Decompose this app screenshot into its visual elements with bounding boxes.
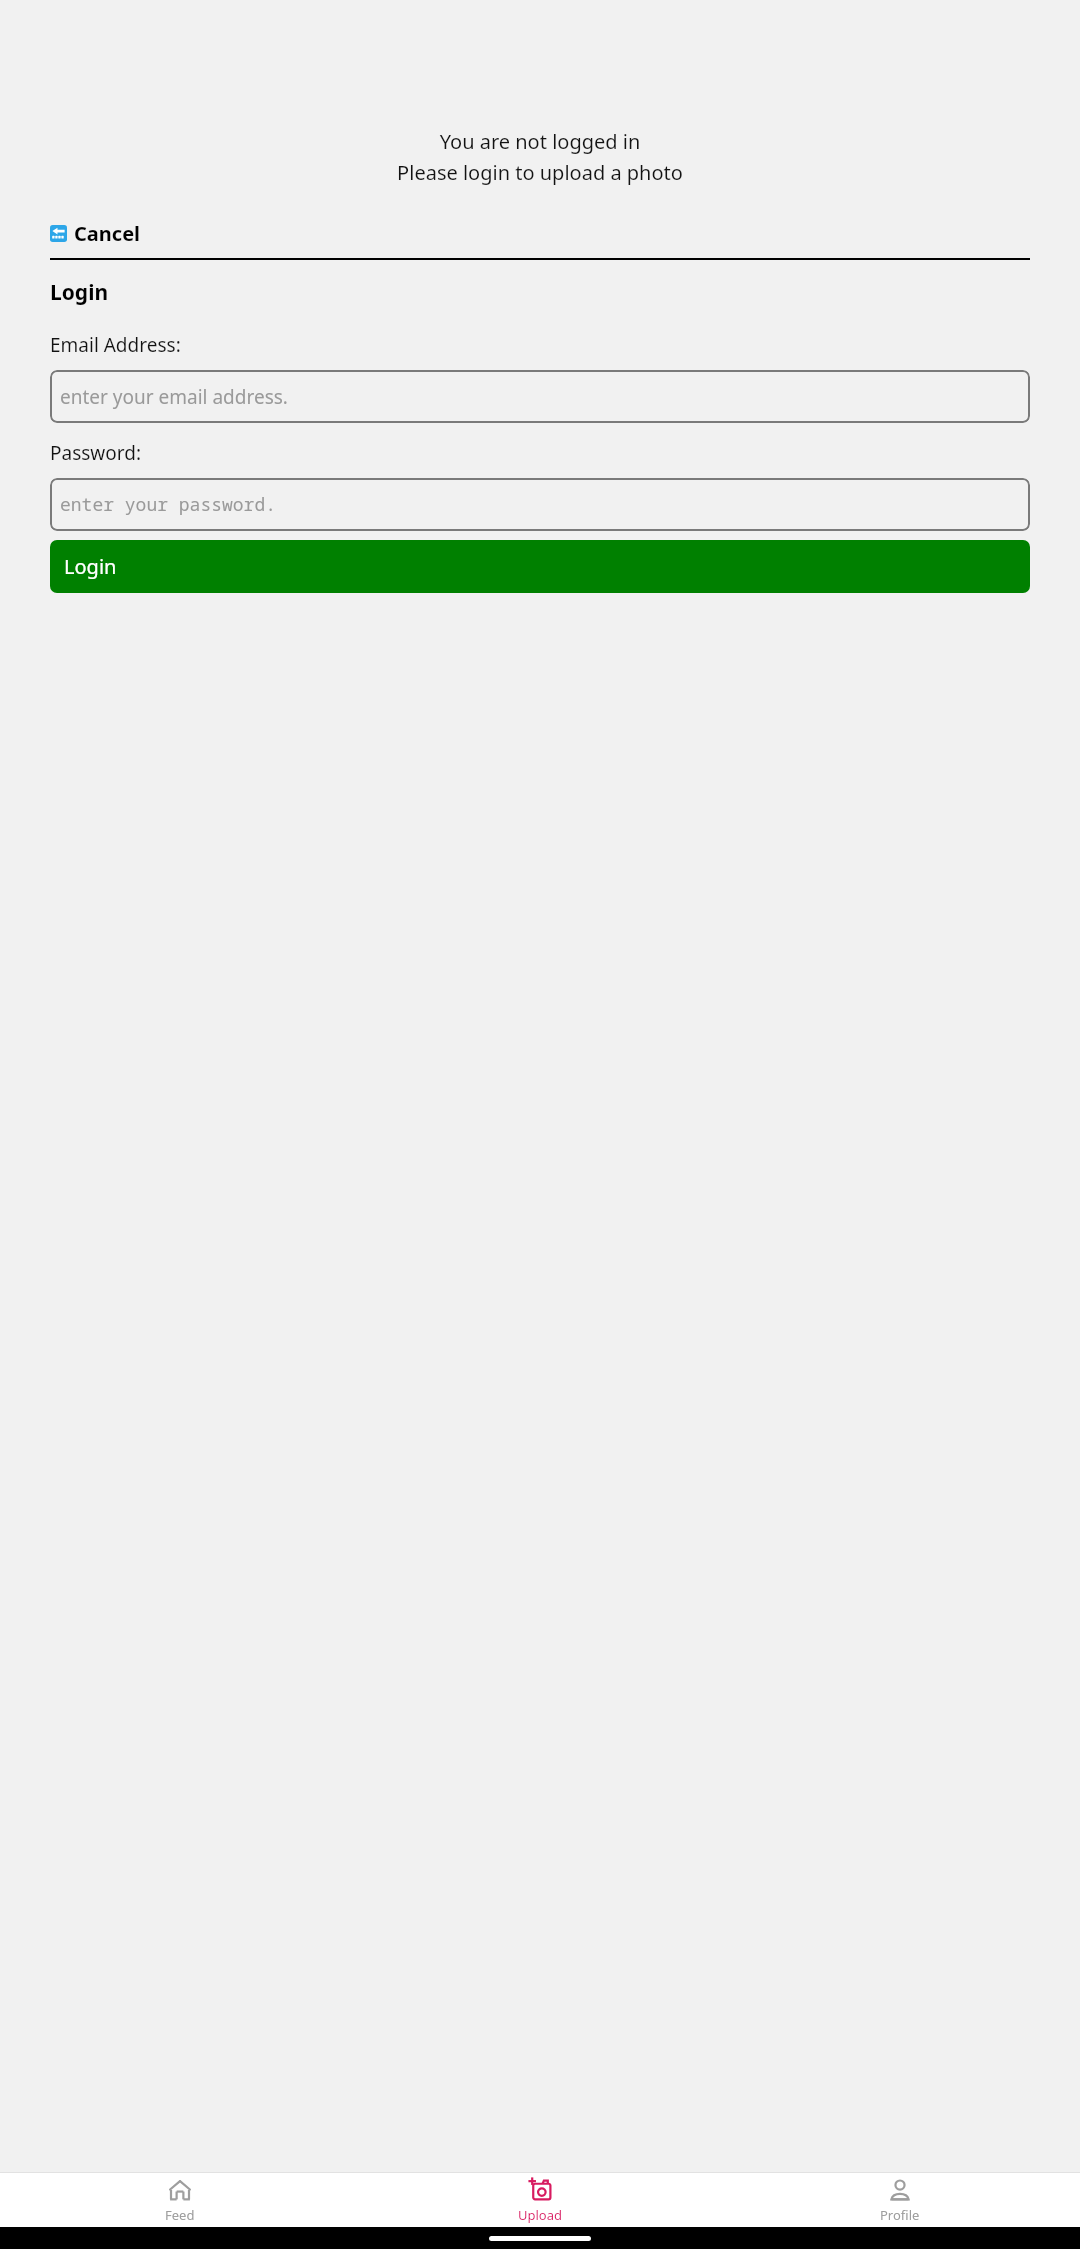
staticText: Cancel (74, 220, 141, 247)
staticText: enter your password. (60, 492, 276, 517)
button[interactable]: Cancel (50, 216, 141, 251)
staticText: You are not logged in (0, 128, 1080, 155)
other: Upload (527, 2177, 553, 2203)
button[interactable]: Profile (720, 2175, 1080, 2226)
button[interactable]: Login (50, 540, 1030, 593)
staticText: Login (64, 553, 117, 580)
staticText: Password: (50, 440, 142, 466)
staticText: Profile (880, 2206, 920, 2224)
staticText: Feed (165, 2206, 195, 2224)
button[interactable]: enter your password. (50, 478, 1030, 531)
staticText: Login (50, 278, 109, 307)
button[interactable]: Upload (360, 2175, 720, 2226)
staticText: Email Address: (50, 332, 181, 358)
other: Feed (167, 2177, 193, 2203)
button[interactable]: Feed (0, 2175, 360, 2226)
staticText: Please login to upload a photo (0, 159, 1080, 186)
staticText: Upload (518, 2206, 563, 2224)
staticText: enter your email address. (60, 384, 288, 410)
button[interactable]: enter your email address. (50, 370, 1030, 423)
other: Profile (887, 2177, 913, 2203)
